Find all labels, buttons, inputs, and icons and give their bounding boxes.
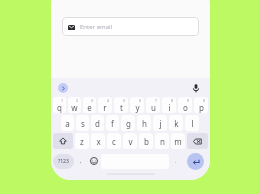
button[interactable]: 0 — [194, 97, 208, 113]
button[interactable]: z — [75, 133, 89, 149]
staticText: s — [81, 118, 85, 129]
staticText: 8 — [171, 98, 174, 103]
staticText: c — [112, 136, 116, 147]
button[interactable]: 1 — [53, 97, 66, 113]
button[interactable]: l — [185, 115, 199, 131]
button[interactable]: Voice input — [190, 82, 202, 94]
staticText: y — [135, 102, 140, 113]
staticText: w — [71, 102, 78, 113]
button[interactable]: Emoji — [88, 151, 99, 171]
staticText: k — [174, 118, 179, 129]
staticText: u — [151, 102, 156, 113]
staticText: 7 — [155, 98, 158, 103]
staticText: 6 — [139, 98, 142, 103]
button[interactable]: g — [121, 115, 135, 131]
button[interactable]: m — [171, 133, 185, 149]
staticText: v — [128, 136, 133, 147]
staticText: m — [174, 136, 182, 147]
button[interactable]: 2 — [68, 97, 81, 113]
button[interactable]: Enter — [187, 153, 204, 170]
staticText: 2 — [76, 98, 79, 103]
button[interactable]: . — [171, 151, 181, 171]
button[interactable]: 8 — [162, 97, 176, 113]
staticText: z — [80, 136, 84, 147]
staticText: f — [111, 118, 114, 129]
button[interactable]: v — [123, 133, 137, 149]
button[interactable]: b — [139, 133, 153, 149]
staticText: , — [80, 157, 82, 165]
button[interactable]: Next suggestion — [58, 83, 68, 93]
button[interactable]: c — [107, 133, 121, 149]
button[interactable]: 3 — [83, 97, 96, 113]
button[interactable]: Shift — [53, 133, 73, 149]
staticText: 9 — [187, 98, 190, 103]
staticText: r — [103, 102, 107, 113]
button[interactable]: 9 — [178, 97, 192, 113]
staticText: l — [191, 118, 194, 129]
staticText: 3 — [91, 98, 94, 103]
button[interactable]: h — [137, 115, 151, 131]
staticText: j — [159, 118, 162, 129]
staticText: q — [57, 102, 62, 113]
staticText: Enter email — [80, 23, 113, 31]
button[interactable]: Backspace — [187, 133, 208, 149]
button[interactable]: 5 — [114, 97, 128, 113]
staticText: x — [96, 136, 101, 147]
staticText: 1 — [61, 98, 64, 103]
button[interactable]: a — [61, 115, 74, 131]
button[interactable]: k — [169, 115, 183, 131]
button[interactable]: f — [106, 115, 119, 131]
button[interactable]: d — [91, 115, 104, 131]
button[interactable]: 6 — [130, 97, 144, 113]
staticText: d — [95, 118, 100, 129]
staticText: p — [199, 102, 204, 113]
staticText: . — [175, 157, 177, 165]
staticText: e — [87, 102, 92, 113]
staticText: 0 — [203, 98, 206, 103]
staticText: a — [65, 118, 70, 129]
staticText: i — [168, 102, 171, 113]
button[interactable]: x — [91, 133, 105, 149]
button[interactable]: 4 — [98, 97, 112, 113]
button[interactable]: Enter email — [62, 17, 199, 36]
staticText: 4 — [107, 98, 110, 103]
button[interactable]: j — [153, 115, 167, 131]
staticText: ?123 — [58, 158, 69, 165]
button[interactable]: 7 — [146, 97, 160, 113]
staticText: t — [120, 102, 123, 113]
staticText: b — [144, 136, 149, 147]
button[interactable]: , — [76, 151, 86, 171]
staticText: g — [126, 118, 131, 129]
button[interactable]: ?123 — [53, 154, 74, 169]
staticText: h — [142, 118, 147, 129]
staticText: o — [183, 102, 188, 113]
staticText: 5 — [123, 98, 126, 103]
button[interactable]: s — [76, 115, 89, 131]
staticText: n — [160, 136, 165, 147]
button[interactable]: n — [155, 133, 169, 149]
